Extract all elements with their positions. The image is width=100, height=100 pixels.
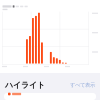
staticText: ハイライト <box>5 80 45 90</box>
button[interactable]: すべて表示 <box>70 82 95 88</box>
staticText: すべて表示 <box>70 82 95 88</box>
